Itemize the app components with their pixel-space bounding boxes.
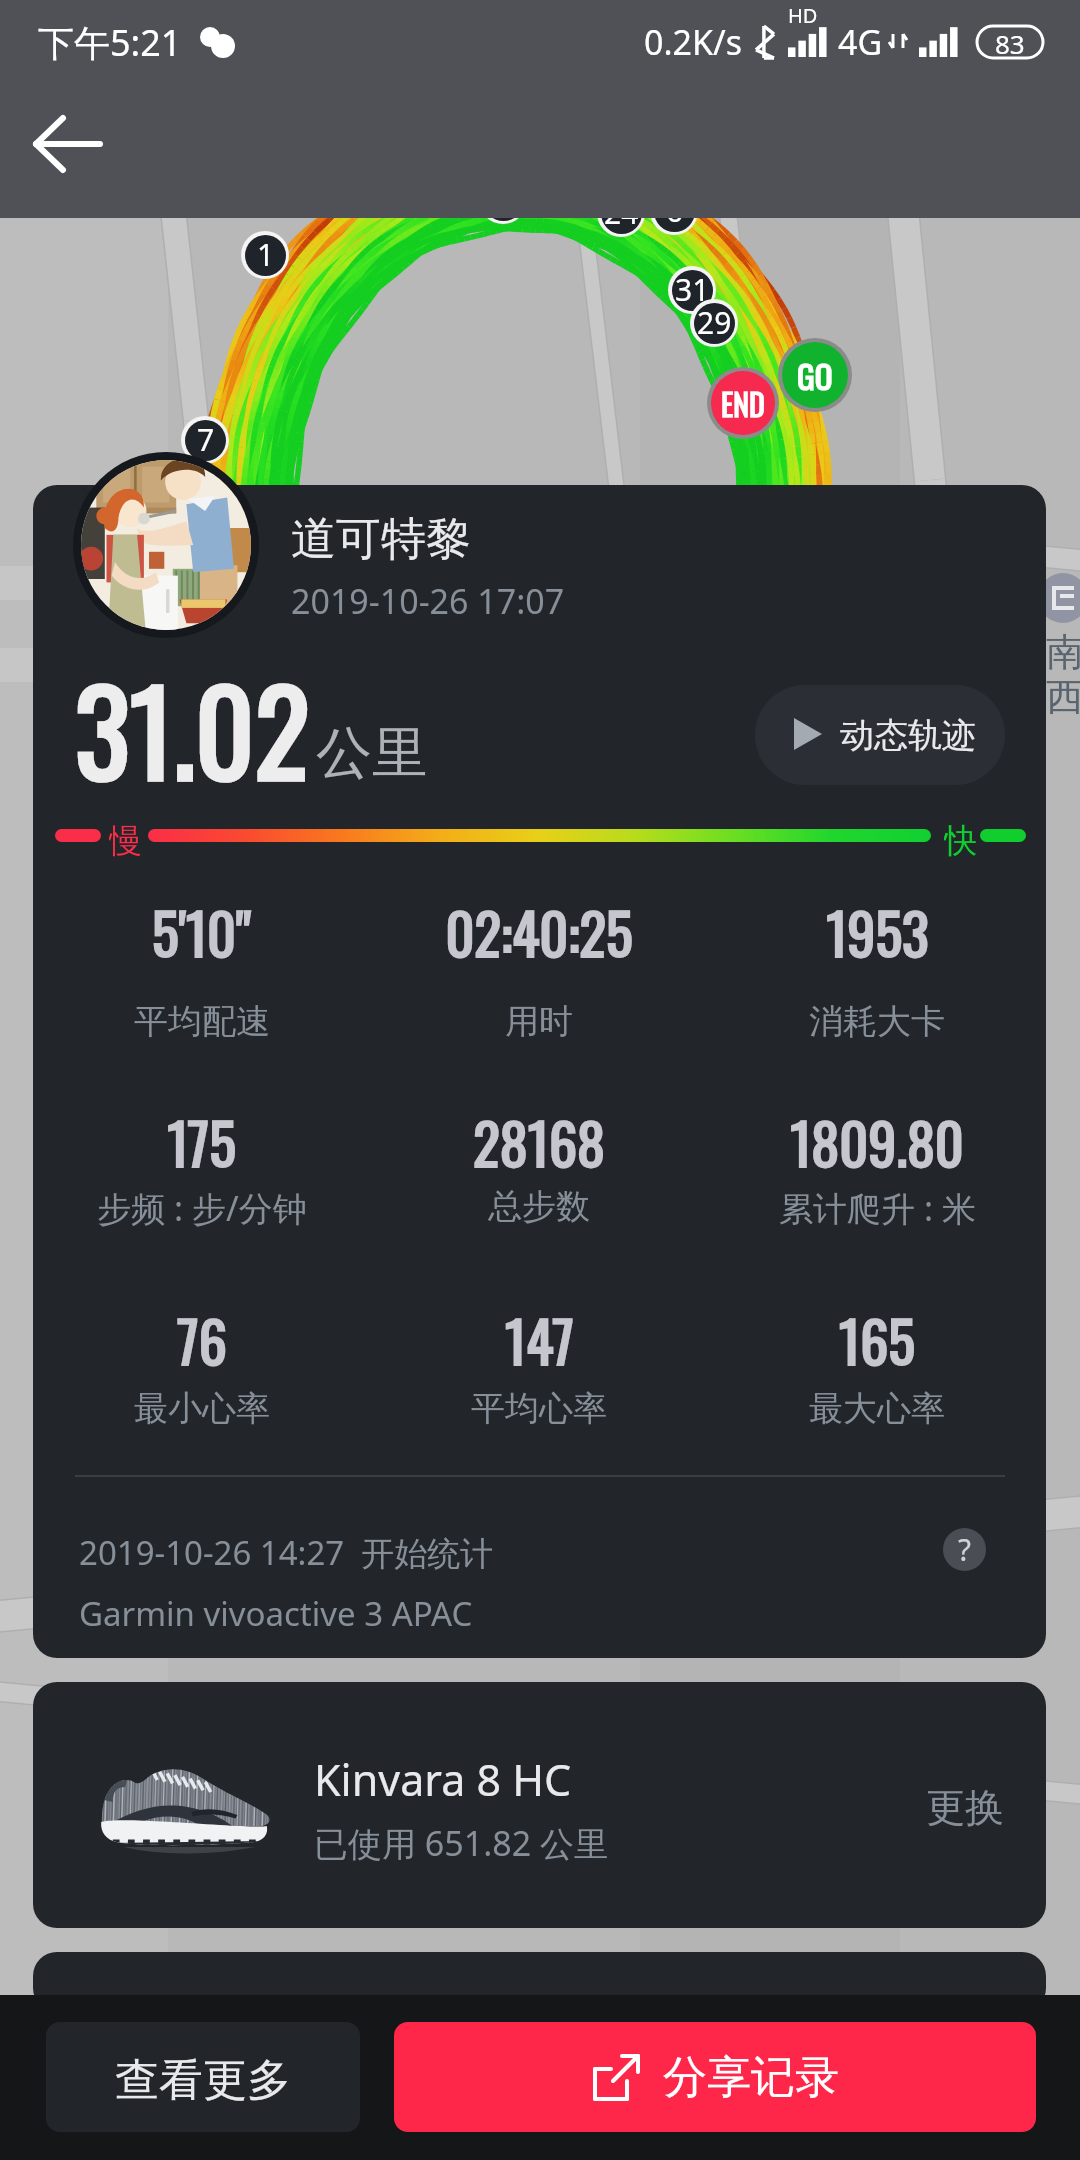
staticText: 南 西 <box>1046 628 1080 722</box>
staticText: 最小心率 <box>134 1387 270 1430</box>
staticText: 31.02 <box>75 643 310 813</box>
staticText: 平均心率 <box>471 1387 607 1430</box>
button[interactable] <box>33 1952 1046 2012</box>
staticText: 下午5:21 <box>38 18 182 67</box>
staticText: 快 <box>944 820 977 860</box>
staticText: 公里 <box>316 718 428 789</box>
staticText: 道可特黎 <box>291 511 471 568</box>
staticText: 5'10" <box>152 890 251 973</box>
staticText: 24 <box>604 193 639 233</box>
staticText: 已使用 651.82 公里 <box>314 1820 609 1866</box>
staticText: 76 <box>177 1298 227 1381</box>
staticText: ? <box>958 1529 972 1570</box>
staticText: 21 <box>486 180 521 220</box>
button[interactable]: Back <box>18 94 118 194</box>
staticText: 83 <box>995 26 1025 58</box>
button[interactable]: 动态轨迹 <box>755 685 1005 785</box>
staticText: 147 <box>505 1298 574 1381</box>
staticText: 28168 <box>473 1100 605 1183</box>
staticText: 消耗大卡 <box>809 1000 945 1043</box>
staticText: 31 <box>675 270 710 310</box>
staticText: HD <box>788 2 818 29</box>
staticText: 慢 <box>109 820 142 860</box>
staticText: 7 <box>197 420 215 460</box>
staticText: 最大心率 <box>809 1387 945 1430</box>
staticText: 更换 <box>926 1783 1004 1832</box>
staticText: 2019-10-26 14:27 开始统计 <box>79 1530 494 1575</box>
staticText: 29 <box>697 303 732 343</box>
button[interactable]: Kinvara 8 HC <box>33 1682 1046 1928</box>
staticText: 1953 <box>826 890 929 973</box>
staticText: 2019-10-26 17:07 <box>291 578 565 624</box>
staticText: 分享记录 <box>663 2050 839 2105</box>
staticText: 175 <box>167 1100 236 1183</box>
button[interactable]: 查看更多 <box>46 2022 360 2132</box>
staticText: GO <box>797 351 833 400</box>
staticText: 02:40:25 <box>445 890 633 973</box>
staticText: 用时 <box>505 1000 573 1043</box>
staticText: END <box>721 381 765 425</box>
staticText: 165 <box>839 1298 915 1381</box>
staticText: 0.2K/s <box>644 19 742 65</box>
button[interactable]: 分享记录 <box>394 2022 1036 2132</box>
staticText: 总步数 <box>488 1185 590 1228</box>
button[interactable]: Help <box>943 1528 986 1571</box>
staticText: 6 <box>666 191 684 231</box>
staticText: 动态轨迹 <box>840 714 976 757</box>
staticText: Garmin vivoactive 3 APAC <box>79 1591 473 1636</box>
staticText: Kinvara 8 HC <box>314 1750 572 1809</box>
staticText: 累计爬升 : 米 <box>779 1185 976 1231</box>
staticText: 步频 : 步/分钟 <box>97 1185 307 1231</box>
staticText: 查看更多 <box>115 2053 291 2108</box>
staticText: 1809.80 <box>790 1100 964 1183</box>
staticText: 4G <box>838 19 883 65</box>
staticText: 平均配速 <box>134 1000 270 1043</box>
staticText: 1 <box>257 235 275 275</box>
